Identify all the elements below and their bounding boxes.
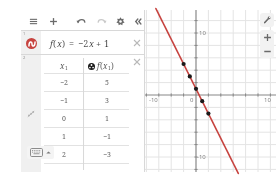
button[interactable]: Zoom in xyxy=(260,30,274,44)
button[interactable]: Add item xyxy=(44,12,62,30)
staticText: 1 xyxy=(105,114,109,124)
button[interactable]: 0 xyxy=(44,110,129,127)
staticText: 10 xyxy=(264,96,271,104)
button[interactable]: Undo xyxy=(72,12,90,30)
staticText: ) xyxy=(62,37,66,49)
button[interactable]: Redo xyxy=(93,12,111,30)
staticText: 2 xyxy=(23,55,26,60)
staticText: ( xyxy=(53,37,57,49)
button[interactable]: 2 xyxy=(44,146,129,163)
staticText: 1 xyxy=(62,132,66,142)
button[interactable]: Point style xyxy=(87,62,95,70)
button[interactable]: Zoom out xyxy=(260,44,274,58)
staticText: 1 xyxy=(23,31,26,36)
staticText: −3 xyxy=(103,150,111,160)
staticText: f xyxy=(97,60,100,71)
staticText: 5 xyxy=(105,78,109,88)
staticText: 3 xyxy=(105,96,109,106)
staticText: 0 xyxy=(62,114,66,124)
staticText: -10 xyxy=(197,153,206,161)
staticText: f xyxy=(50,37,53,49)
staticText: −1 xyxy=(60,96,68,106)
button[interactable]: Delete expression xyxy=(129,31,145,55)
staticText: ) xyxy=(111,60,114,71)
staticText: 2 xyxy=(62,150,66,160)
staticText: x xyxy=(57,37,62,49)
button[interactable]: Toggle keypad xyxy=(27,146,54,159)
staticText: x xyxy=(60,60,65,71)
staticText: + xyxy=(96,37,102,49)
button[interactable]: −2 xyxy=(44,74,129,91)
staticText: 1 xyxy=(104,37,110,49)
button[interactable]: Collapse panel xyxy=(132,12,143,30)
staticText: x xyxy=(103,60,108,71)
button[interactable]: 1 xyxy=(44,128,129,145)
staticText: = xyxy=(69,37,75,49)
button[interactable]: Graph settings xyxy=(260,13,274,27)
button[interactable]: Settings xyxy=(111,12,129,30)
button[interactable]: Toggle graph visibility xyxy=(26,38,37,49)
staticText: -10 xyxy=(149,96,158,104)
button[interactable]: Menu xyxy=(24,12,42,30)
button[interactable]: 1 xyxy=(21,31,145,55)
staticText: ( xyxy=(100,60,103,71)
staticText: −2 xyxy=(60,78,68,88)
staticText: −1 xyxy=(103,132,111,142)
staticText: 10 xyxy=(199,29,206,37)
staticText: 1 xyxy=(108,65,111,72)
button[interactable]: −1 xyxy=(44,92,129,109)
staticText: 0 xyxy=(190,96,194,104)
button[interactable]: Delete table xyxy=(129,55,145,172)
staticText: 1 xyxy=(65,65,68,72)
staticText: x xyxy=(89,37,94,49)
staticText: −2 xyxy=(78,37,89,49)
